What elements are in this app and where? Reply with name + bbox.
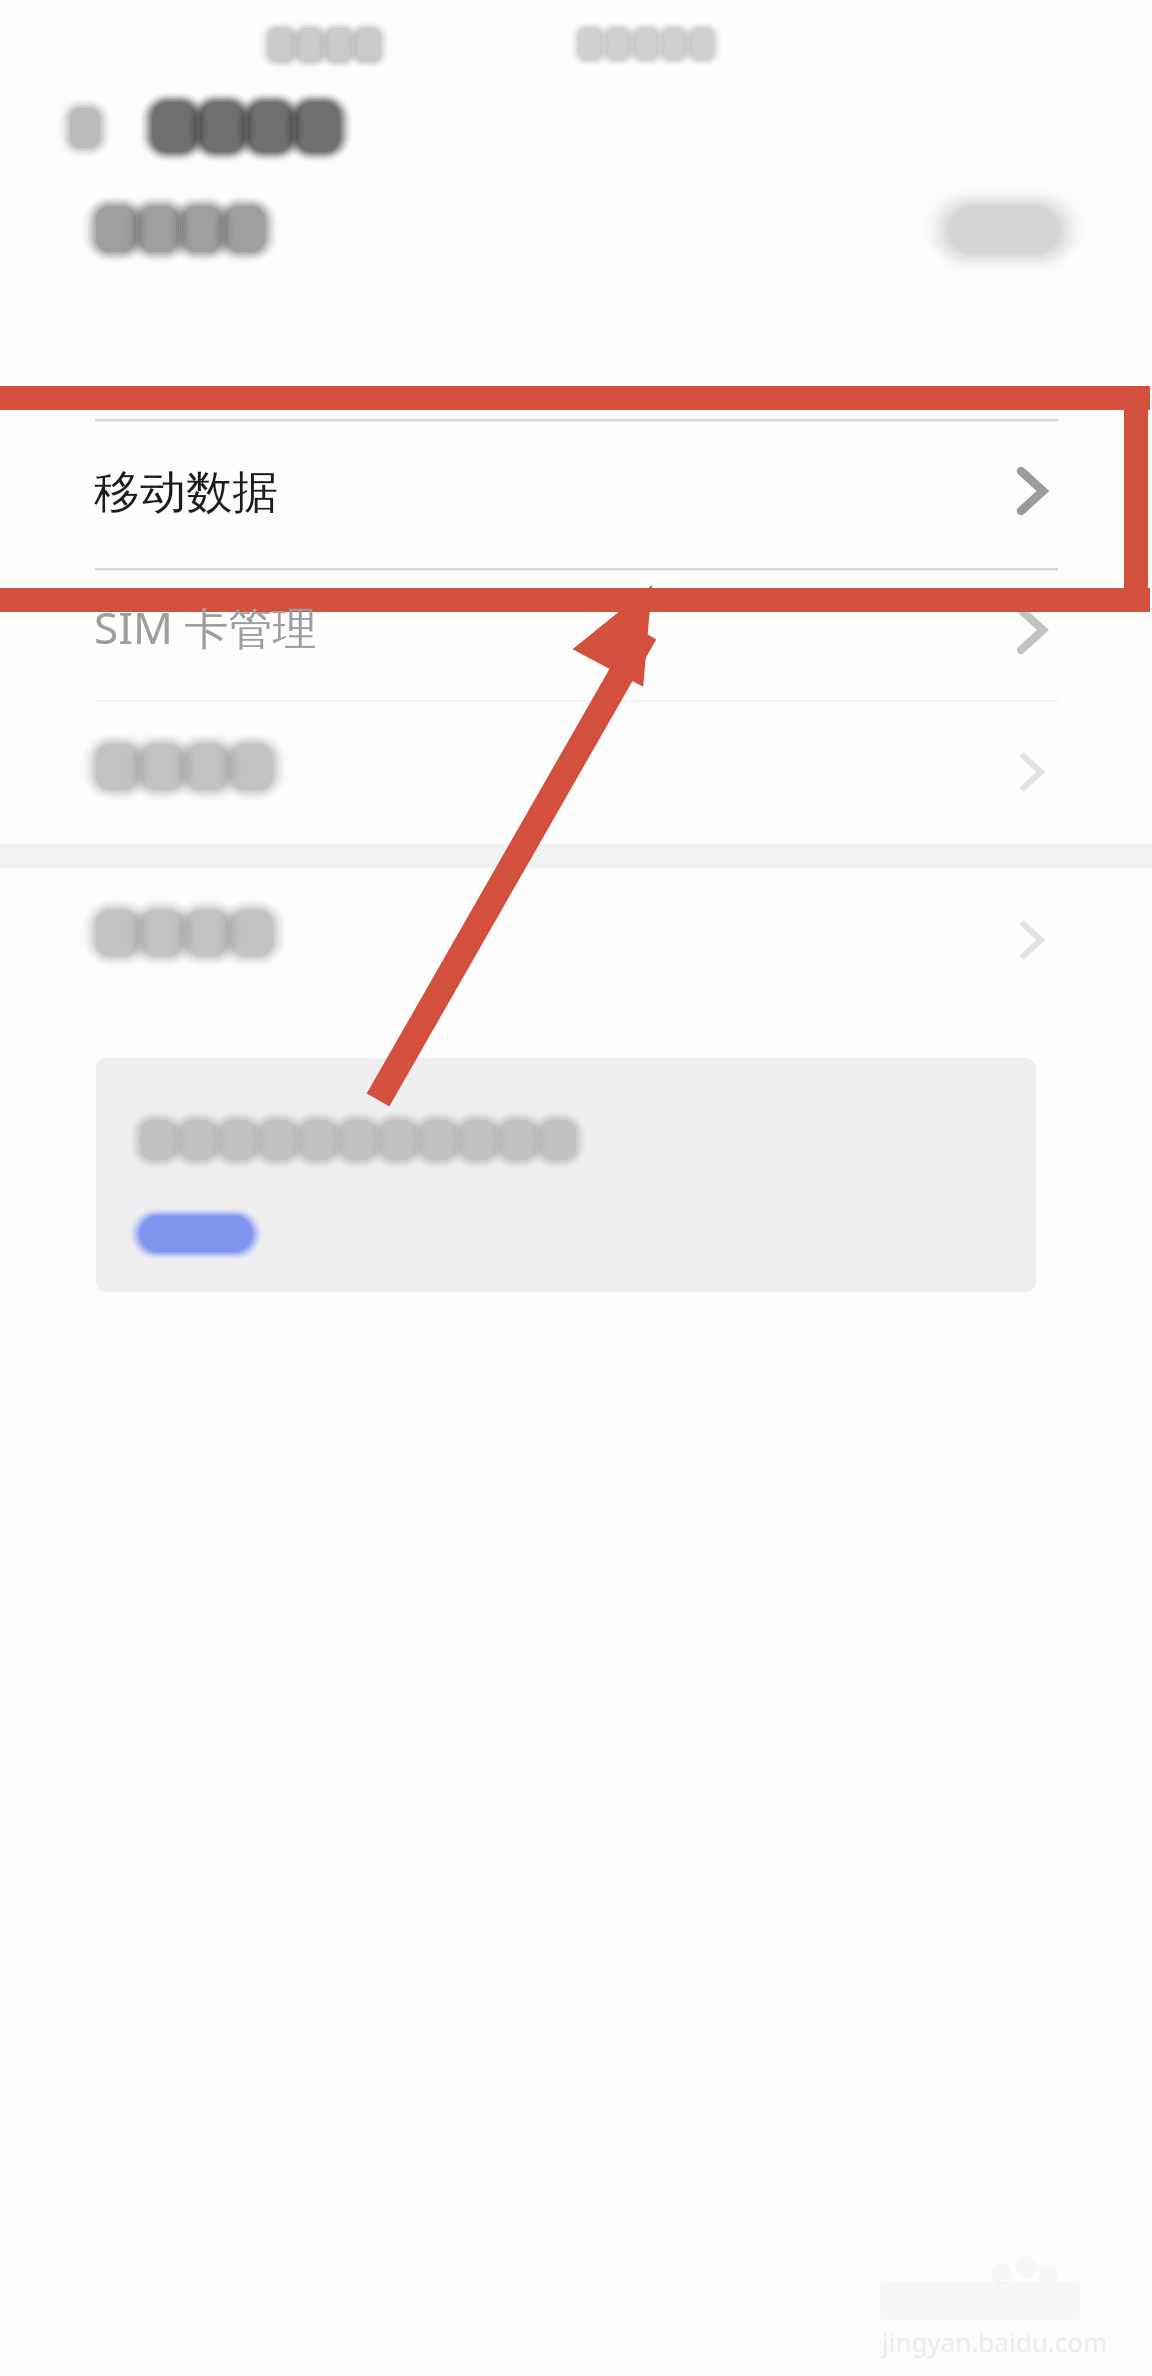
button[interactable]: 设置项 xyxy=(0,702,1152,842)
button[interactable]: 飞行模式 xyxy=(0,180,1152,280)
button[interactable]: Back xyxy=(50,96,122,168)
staticText: 移动数据 xyxy=(94,464,278,522)
button[interactable]: 设置项 xyxy=(0,870,1152,1010)
staticText: jingyan.baidu.com xyxy=(882,2324,1108,2359)
button[interactable]: 了解更多 xyxy=(136,1208,266,1260)
button[interactable]: SIM 卡管理 xyxy=(0,572,1152,700)
button[interactable]: 移动数据 xyxy=(0,422,1152,568)
staticText: SIM 卡管理 xyxy=(94,597,317,657)
